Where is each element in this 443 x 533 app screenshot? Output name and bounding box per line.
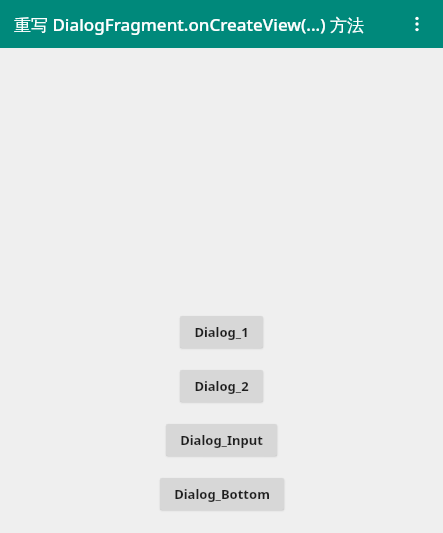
staticText: Dialog_1 xyxy=(194,323,249,341)
staticText: Dialog_Bottom xyxy=(174,485,270,503)
staticText: Dialog_2 xyxy=(194,377,249,395)
staticText: 重写 DialogFragment.onCreateView(...) 方法 xyxy=(14,13,364,36)
button[interactable]: Dialog_1 xyxy=(180,316,263,348)
button[interactable]: Dialog_Bottom xyxy=(160,478,284,510)
button[interactable]: Dialog_Input xyxy=(166,424,277,456)
button[interactable]: Dialog_2 xyxy=(180,370,263,402)
staticText: Dialog_Input xyxy=(180,431,263,449)
button[interactable]: More options xyxy=(397,4,437,44)
